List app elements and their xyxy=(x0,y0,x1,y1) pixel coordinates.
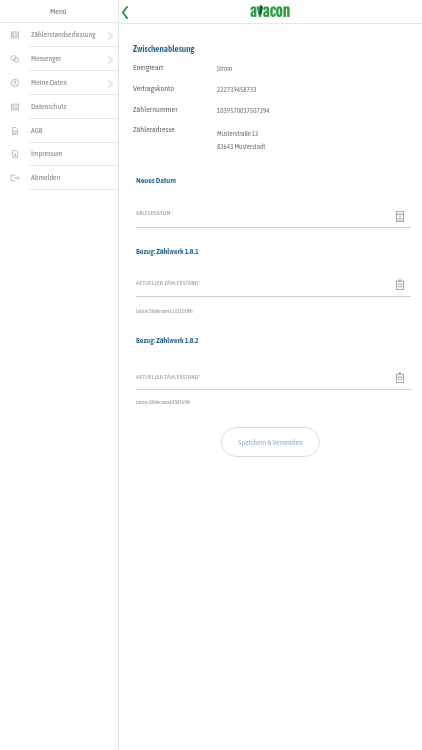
button[interactable]: Datenschutz xyxy=(0,95,118,119)
staticText: Neues Datum xyxy=(136,176,176,185)
button[interactable]: Kalender xyxy=(393,209,407,223)
staticText: AKTUELLER ZÄHLERSTAND* xyxy=(136,279,201,286)
staticText: Impressum xyxy=(31,149,63,158)
button[interactable]: Abmelden xyxy=(0,166,118,190)
staticText: Meine Daten xyxy=(31,78,67,87)
staticText: Abmelden xyxy=(31,173,61,182)
staticText: Bezug: Zählwerk 1.8.2 xyxy=(136,336,199,345)
staticText: Speichern & Versenden xyxy=(238,438,303,447)
staticText: Vertragskonto xyxy=(133,84,175,93)
button[interactable]: Kamera xyxy=(393,277,407,291)
staticText: Bezug: Zählwerk 1.8.1 xyxy=(136,247,199,256)
button[interactable]: Kamera xyxy=(393,370,407,384)
button[interactable]: Meine Daten xyxy=(0,71,118,95)
staticText: Musterstraße 13 xyxy=(217,129,259,137)
staticText: Strom xyxy=(217,64,233,72)
button[interactable]: Messenger xyxy=(0,47,118,71)
button[interactable]: Speichern & Versenden xyxy=(221,427,320,457)
button[interactable]: AGB xyxy=(0,119,118,143)
staticText: 222739458733 xyxy=(217,85,257,93)
staticText: Zählernummer xyxy=(133,105,178,114)
staticText: Zählerstandserfassung xyxy=(31,30,96,39)
staticText: Datenschutz xyxy=(31,102,67,111)
staticText: AGB xyxy=(31,126,43,135)
staticText: Zwischenablesung xyxy=(133,44,195,54)
staticText: 83643 Musterstadt xyxy=(217,142,266,150)
staticText: avacon xyxy=(250,2,290,21)
staticText: Letzter Zählerstand: 8503 kWh xyxy=(136,399,191,405)
button[interactable]: Impressum xyxy=(0,142,118,166)
staticText: ABLESEDATUM* xyxy=(136,209,173,216)
button[interactable]: Zählerstandserfassung xyxy=(0,23,118,47)
staticText: Energieart xyxy=(133,63,164,72)
staticText: Messenger xyxy=(31,54,62,63)
staticText: AKTUELLER ZÄHLERSTAND* xyxy=(136,373,201,380)
staticText: Zähleradresse xyxy=(133,125,175,134)
staticText: 1039570037507394 xyxy=(217,106,270,114)
staticText: Menü xyxy=(50,7,67,16)
staticText: Letzter Zählerstand: 16332 kWh xyxy=(136,308,193,314)
button[interactable]: Zurück xyxy=(115,2,135,22)
